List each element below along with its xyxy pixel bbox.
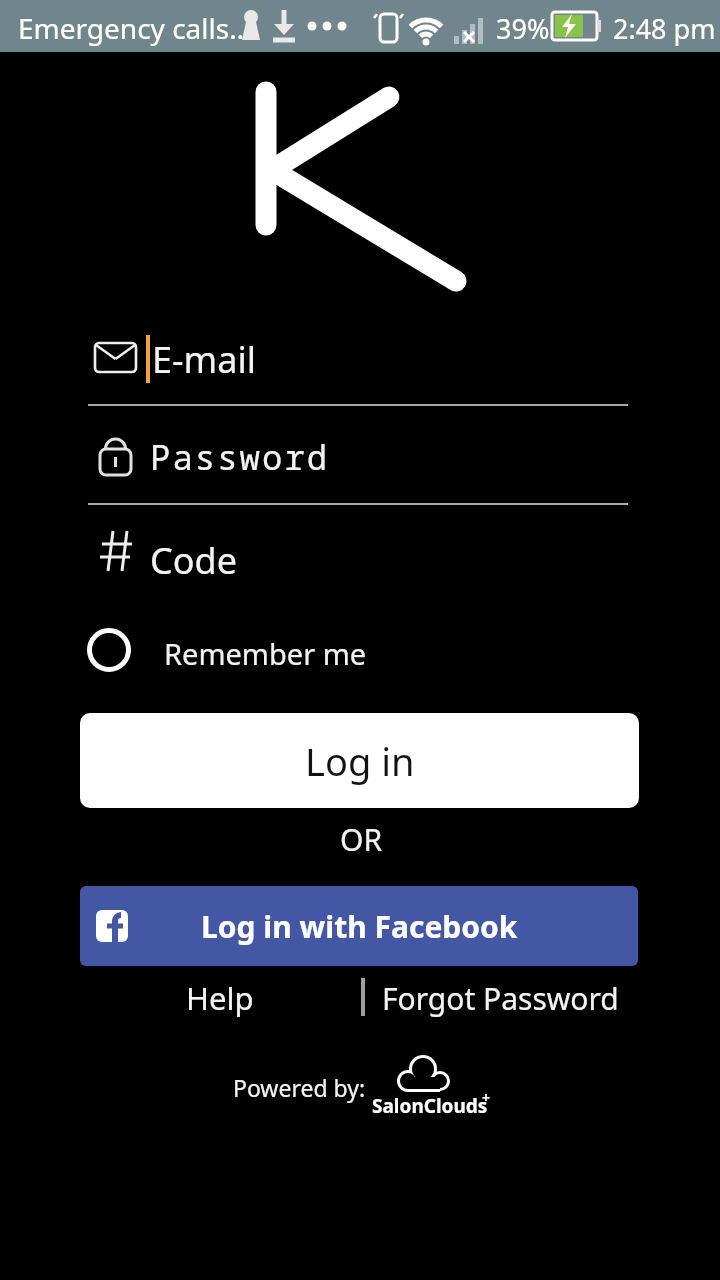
staticText: Help bbox=[186, 977, 254, 1019]
staticText: OR bbox=[340, 819, 383, 860]
button[interactable]: Remember me bbox=[80, 620, 460, 680]
button[interactable]: Password bbox=[80, 424, 628, 504]
staticText: Log in with Facebook bbox=[201, 906, 518, 947]
button[interactable]: Forgot Password bbox=[373, 976, 627, 1020]
staticText: Emergency calls… bbox=[18, 9, 252, 47]
staticText: 2:48 pm bbox=[613, 10, 716, 47]
staticText: E-mail bbox=[152, 335, 257, 384]
staticText: Password bbox=[150, 434, 330, 480]
staticText: Powered by: bbox=[233, 1072, 366, 1103]
button[interactable]: E-mail bbox=[80, 326, 628, 406]
staticText: Forgot Password bbox=[382, 978, 619, 1019]
staticText: Log in bbox=[305, 735, 415, 787]
button[interactable]: Log in with Facebook bbox=[80, 886, 638, 966]
staticText: + bbox=[482, 1088, 491, 1107]
button[interactable]: Log in bbox=[80, 713, 639, 808]
button[interactable]: Code bbox=[80, 524, 628, 594]
staticText: 39% bbox=[496, 10, 550, 47]
staticText: Remember me bbox=[164, 634, 367, 673]
staticText: SalonClouds bbox=[372, 1093, 488, 1119]
button[interactable]: Help bbox=[150, 976, 290, 1020]
staticText: Code bbox=[150, 536, 237, 585]
